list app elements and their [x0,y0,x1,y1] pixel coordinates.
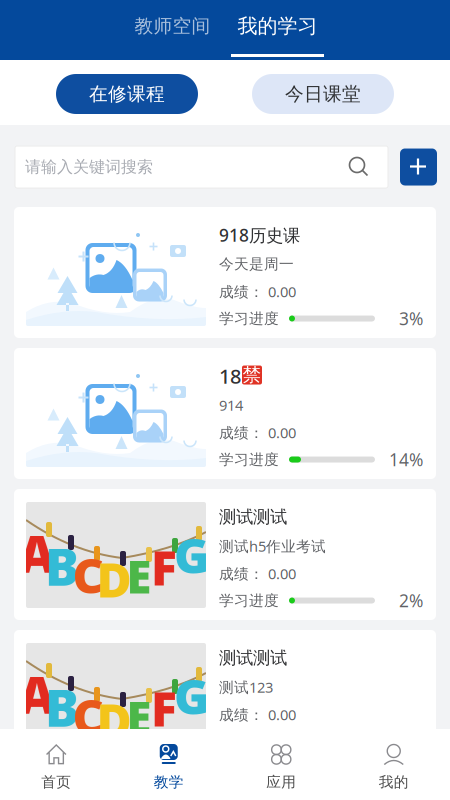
button[interactable]: 18 [14,348,436,479]
staticText: G [174,664,210,728]
staticText: F [151,535,177,599]
button[interactable]: 教师空间 [126,16,219,57]
staticText: 在修课程 [89,82,165,105]
staticText: 3% [399,307,423,330]
staticText: 成绩： 0.00 [219,564,296,583]
staticText: A [18,519,55,587]
staticText: 2% [399,589,423,612]
staticText: 914 [219,395,243,415]
staticText: 成绩： 0.00 [219,423,296,442]
staticText: F [151,676,177,740]
staticText: E [126,546,151,606]
staticText: 成绩： 0.00 [219,282,296,301]
staticText: 首页 [41,773,71,791]
button[interactable]: A [14,630,436,755]
staticText: 学习进度 [219,591,279,609]
button[interactable]: 在修课程 [56,74,198,114]
button[interactable]: 教学 [112,729,225,800]
button[interactable]: 首页 [0,729,112,800]
staticText: 今天是周一 [219,255,294,273]
staticText: C [72,543,103,607]
button[interactable]: 添加 [400,148,437,185]
button[interactable]: 918历史课 [14,207,436,338]
staticText: 我的 [379,773,409,791]
staticText: 测试测试 [219,647,287,669]
staticText: D [96,547,131,611]
staticText: 应用 [266,773,296,791]
staticText: B [45,673,79,741]
staticText: 918历史课 [219,223,300,246]
staticText: 教学 [154,773,184,791]
button[interactable]: 搜索 [348,156,370,178]
staticText: 18 [219,363,241,389]
staticText: 教师空间 [134,14,210,37]
staticText: G [174,523,210,587]
staticText: A [18,660,55,728]
button[interactable]: A [14,489,436,620]
staticText: 测试测试 [219,506,287,528]
staticText: 请输入关键词搜索 [25,157,153,177]
button[interactable]: 今日课堂 [252,74,394,114]
staticText: 成绩： 0.00 [219,705,296,724]
staticText: B [45,532,79,600]
staticText: 测试h5作业考试 [219,536,326,556]
staticText: E [126,687,151,747]
staticText: 今日课堂 [285,82,361,105]
staticText: 我的学习 [237,14,317,38]
staticText: 学习进度 [219,309,279,327]
staticText: 学习进度 [219,450,279,468]
staticText: 禁 [242,363,261,386]
staticText: 14% [389,448,423,471]
button[interactable]: 我的 [337,729,450,800]
staticText: C [72,684,103,748]
button[interactable]: 应用 [225,729,337,800]
staticText: 测试123 [219,677,273,697]
button[interactable]: 我的学习 [231,16,324,57]
staticText: D [96,688,131,752]
